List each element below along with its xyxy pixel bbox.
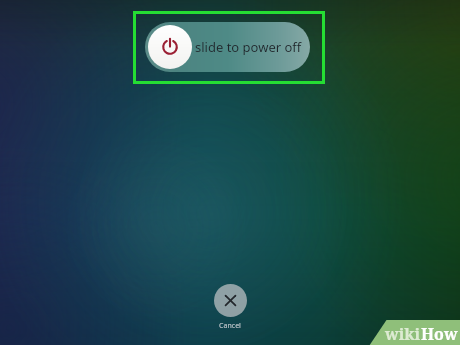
button[interactable]: Cancel xyxy=(206,284,254,331)
staticText: How xyxy=(421,323,458,345)
button[interactable]: Power off xyxy=(145,22,310,72)
staticText: slide to power off xyxy=(195,38,302,56)
staticText: wiki xyxy=(385,323,421,345)
staticText: Cancel xyxy=(219,321,241,331)
button[interactable]: Power off xyxy=(148,25,192,69)
